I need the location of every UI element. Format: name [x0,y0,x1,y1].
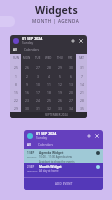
staticText: THU [57,56,63,60]
staticText: 27 [69,98,73,102]
button[interactable]: Calendars [38,143,53,147]
staticText: 10 [36,82,40,86]
button[interactable]: 01 SEP 2024 [24,130,103,190]
staticText: TUE [35,56,41,60]
staticText: SEPTEMBER 2024 [45,113,68,117]
staticText: 28 [47,65,51,69]
button[interactable]: 1 SEP [24,149,103,163]
staticText: 33 [58,106,62,110]
staticText: 6 [70,74,72,78]
staticText: 25 [47,98,51,102]
staticText: 10:00 - 11:00 Agenda view [39,155,72,159]
button[interactable]: All [13,48,17,52]
staticText: 31 [80,65,84,69]
staticText: 1 [15,74,17,78]
staticText: 35 [80,106,84,110]
staticText: ADD EVENT [55,182,73,186]
staticText: Sunday [36,136,48,140]
staticText: 26 [58,98,62,102]
button[interactable]: ADD EVENT [24,178,103,190]
staticText: 01 SEP 2024 [22,36,43,41]
staticText: 30 [69,65,73,69]
staticText: 28 [80,98,84,102]
staticText: 26 [25,65,29,69]
staticText: 4 [48,74,50,78]
staticText: Widgets [35,3,78,17]
staticText: 7 [81,74,83,78]
staticText: 24 [36,98,40,102]
staticText: SAT [79,56,84,60]
button[interactable]: Calendars [24,48,39,52]
staticText: 3 [37,74,39,78]
button[interactable]: Add event [86,133,92,139]
button[interactable]: 2 SEP [24,163,103,177]
staticText: SUN [13,56,19,60]
staticText: 21 [80,90,84,94]
staticText: 2 [26,74,28,78]
staticText: 15 [14,90,18,94]
staticText: Agenda Widget [39,151,64,155]
staticText: 29 [14,106,18,110]
staticText: 30 [25,106,29,110]
staticText: 31 [36,106,40,110]
staticText: 32 [47,106,51,110]
staticText: MONDAY [27,169,38,172]
staticText: 17 [36,90,40,94]
staticText: 12 [58,82,62,86]
staticText: 5 [59,74,61,78]
button[interactable]: All [27,143,31,147]
button[interactable]: Add event [70,38,76,44]
staticText: 11 [47,82,51,86]
staticText: 27 [36,65,40,69]
staticText: SUNDAY [27,155,37,158]
staticText: 22 [14,98,18,102]
staticText: All day at home [39,169,59,173]
staticText: A widget to show the events [39,160,75,163]
staticText: 18 [47,90,51,94]
staticText: 25 [14,65,18,69]
staticText: Month Widget [39,165,62,169]
staticText: 23 [25,98,29,102]
staticText: 13 [69,82,73,86]
staticText: 19 [58,90,62,94]
staticText: 8 [15,82,17,86]
staticText: MONTH | AGENDA [32,18,80,24]
button[interactable]: 01 SEP 2024 [10,35,87,118]
staticText: 14 [80,82,84,86]
staticText: 01 SEP 2024 [36,131,57,136]
staticText: 2 SEP [27,165,35,169]
staticText: 1 SEP [27,151,35,155]
staticText: 34 [69,106,73,110]
staticText: MON [23,56,31,60]
staticText: Sunday [22,41,34,45]
staticText: 20 [69,90,73,94]
staticText: FRI [68,56,73,60]
staticText: 9 [26,82,28,86]
button[interactable]: Settings [78,38,84,44]
button[interactable]: Settings [94,133,100,139]
staticText: 16 [25,90,29,94]
staticText: WED [45,56,52,60]
staticText: 29 [58,65,62,69]
